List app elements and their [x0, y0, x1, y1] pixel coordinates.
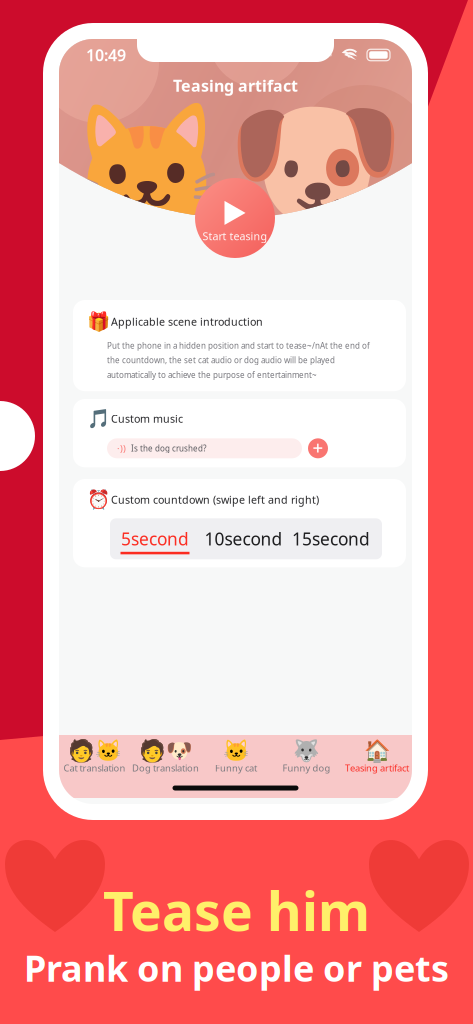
staticText: Custom music — [111, 412, 183, 426]
button[interactable]: 🧑🐱 — [59, 738, 130, 776]
staticText: Tease him — [103, 875, 370, 946]
button[interactable]: 🧑🐶 — [130, 738, 201, 776]
staticText: ·)) — [117, 442, 126, 454]
staticText: Prank on people or pets — [24, 944, 449, 992]
button[interactable]: 🐱 — [201, 738, 271, 776]
staticText: Dog translation — [132, 762, 199, 774]
staticText: Applicable scene introduction — [111, 315, 263, 329]
staticText: 🐱 — [66, 97, 225, 244]
staticText: + — [312, 435, 323, 460]
staticText: 10:49 — [86, 44, 126, 66]
button[interactable]: 15second — [287, 518, 375, 559]
staticText: 🐶 — [225, 82, 404, 247]
staticText: 🐱 — [222, 739, 249, 763]
staticText: 🏠 — [363, 739, 390, 763]
button[interactable]: 🐺 — [271, 738, 342, 776]
staticText: Teasing artifact — [173, 75, 298, 96]
staticText: 🧑🐶 — [138, 739, 192, 763]
button[interactable]: 10second — [200, 518, 287, 559]
button[interactable]: 🏠 — [342, 738, 412, 776]
staticText: Is the dog crushed? — [131, 443, 206, 454]
staticText: 🐺 — [293, 739, 320, 763]
button[interactable]: 5second — [110, 518, 200, 559]
staticText: 🎁 — [87, 311, 110, 332]
button[interactable]: ·)) — [107, 438, 302, 458]
staticText: 5second — [121, 527, 189, 550]
staticText: 🎵 — [87, 408, 110, 429]
staticText: Custom countdown (swipe left and right) — [111, 493, 319, 507]
staticText: Funny cat — [215, 762, 257, 774]
staticText: Put the phone in a hidden position and s… — [107, 340, 370, 380]
button[interactable]: Start teasing — [195, 178, 275, 258]
staticText: Teasing artifact — [345, 762, 409, 774]
button[interactable]: Add music — [308, 438, 328, 458]
staticText: 10second — [204, 527, 282, 550]
staticText: Cat translation — [63, 762, 125, 774]
staticText: 15second — [292, 527, 370, 550]
staticText: 🧑🐱 — [67, 739, 121, 763]
staticText: Start teasing — [202, 229, 267, 243]
staticText: ⏰ — [87, 489, 110, 510]
staticText: Funny dog — [282, 762, 330, 774]
